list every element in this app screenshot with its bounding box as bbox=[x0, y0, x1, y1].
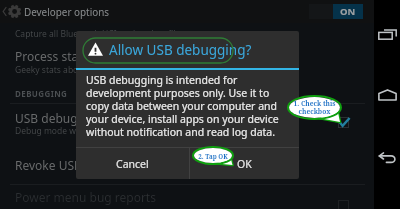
staticText: USB debugging is intended for developmen… bbox=[86, 73, 291, 139]
staticText: Power menu bug reports bbox=[15, 189, 156, 205]
staticText: ON bbox=[340, 5, 356, 18]
button[interactable]: Cancel bbox=[76, 148, 189, 179]
button[interactable]: Navigate up bbox=[0, 0, 24, 23]
button[interactable]: Home bbox=[374, 85, 400, 106]
staticText: Capture all Bluetooth HCI packets in a f… bbox=[15, 28, 181, 40]
staticText: Cancel bbox=[116, 157, 149, 171]
staticText: USB debugging bbox=[15, 110, 103, 126]
staticText: Revoke USB debugging authorizations bbox=[15, 157, 232, 173]
staticText: OK bbox=[237, 157, 252, 171]
staticText: Process stats bbox=[15, 48, 89, 64]
staticText: Debug mode when USB is connected bbox=[15, 125, 163, 137]
staticText: 1. Check this checkbox bbox=[288, 99, 341, 116]
button[interactable]: Back bbox=[374, 149, 400, 170]
staticText: 2. Tap OK bbox=[193, 152, 233, 160]
staticText: Developer options bbox=[24, 5, 110, 18]
staticText: Allow USB debugging? bbox=[109, 41, 252, 59]
button[interactable]: Developer options on bbox=[309, 4, 363, 19]
button[interactable]: Recents bbox=[374, 24, 400, 45]
button[interactable]: OK bbox=[190, 148, 299, 179]
staticText: DEBUGGING bbox=[15, 88, 68, 99]
staticText: Geeky stats about running processes bbox=[15, 64, 163, 76]
